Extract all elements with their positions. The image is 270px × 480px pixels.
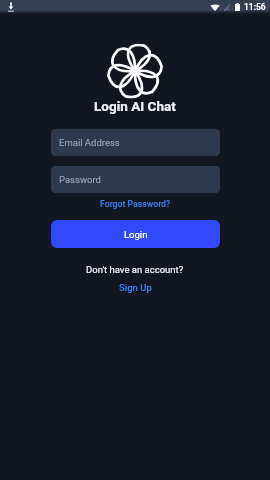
- staticText: 11:56: [244, 2, 266, 12]
- button[interactable]: Forgot Password?: [96, 198, 175, 210]
- staticText: Login: [124, 229, 148, 240]
- staticText: Password: [59, 174, 101, 185]
- button[interactable]: Login: [51, 220, 220, 248]
- button[interactable]: Email Address: [51, 129, 220, 156]
- button[interactable]: Sign Up: [115, 281, 156, 294]
- staticText: Don't have an account?: [86, 264, 184, 275]
- staticText: Forgot Password?: [100, 199, 171, 209]
- button[interactable]: Password: [51, 166, 220, 193]
- staticText: Sign Up: [119, 282, 152, 293]
- other: Download: [7, 2, 15, 12]
- staticText: Login AI Chat: [94, 98, 176, 114]
- staticText: Email Address: [59, 137, 120, 148]
